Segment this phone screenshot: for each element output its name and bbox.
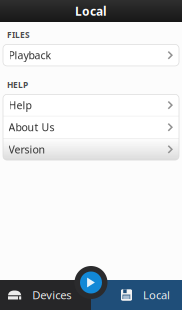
staticText: Playback [8, 48, 51, 62]
button[interactable]: About Us [3, 116, 179, 138]
staticText: Help [8, 98, 31, 112]
button[interactable]: Local [91, 280, 182, 310]
button[interactable]: Devices [0, 280, 91, 310]
staticText: Local [143, 287, 170, 303]
button[interactable]: Help [3, 94, 179, 116]
staticText: Devices [32, 287, 71, 303]
staticText: FILES [7, 29, 30, 40]
button[interactable]: Version [3, 139, 179, 160]
button[interactable]: Playback [3, 44, 179, 66]
staticText: HELP [7, 79, 28, 90]
staticText: About Us [8, 120, 54, 134]
button[interactable]: Play [74, 266, 107, 299]
staticText: Version [8, 142, 45, 156]
staticText: Local [75, 3, 107, 19]
